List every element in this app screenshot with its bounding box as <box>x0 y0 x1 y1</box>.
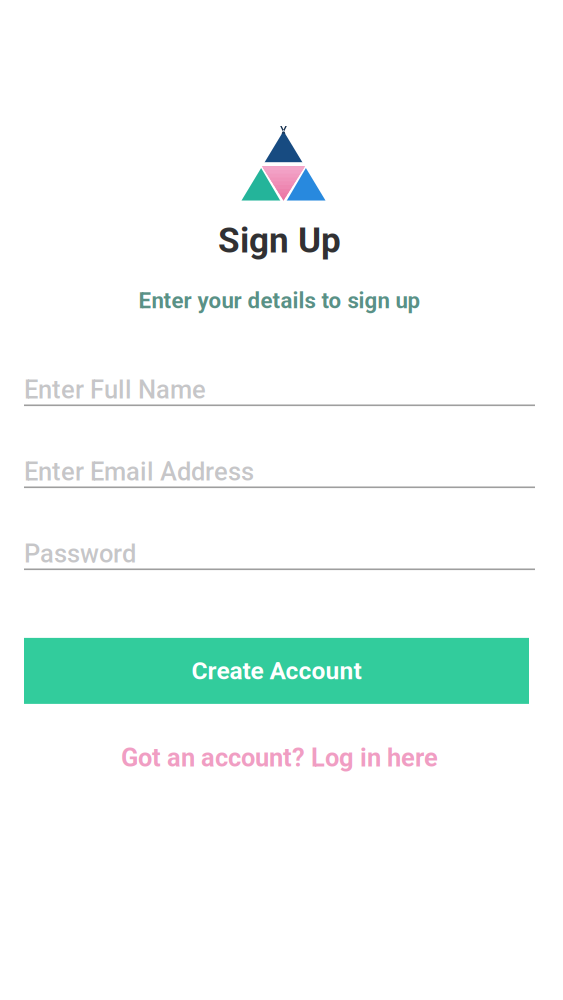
button[interactable]: Create Account <box>24 638 529 704</box>
staticText: Password <box>24 539 136 569</box>
staticText: Enter Full Name <box>24 375 206 405</box>
button[interactable]: Got an account? Log in here <box>121 743 438 773</box>
staticText: Create Account <box>191 656 361 685</box>
staticText: Sign Up <box>218 220 341 261</box>
button[interactable]: Password <box>24 539 535 572</box>
button[interactable]: Enter Email Address <box>24 457 535 490</box>
staticText: Got an account? Log in here <box>121 743 438 773</box>
button[interactable]: Enter Full Name <box>24 375 535 408</box>
staticText: Enter Email Address <box>24 457 254 487</box>
staticText: Enter your details to sign up <box>138 288 420 314</box>
